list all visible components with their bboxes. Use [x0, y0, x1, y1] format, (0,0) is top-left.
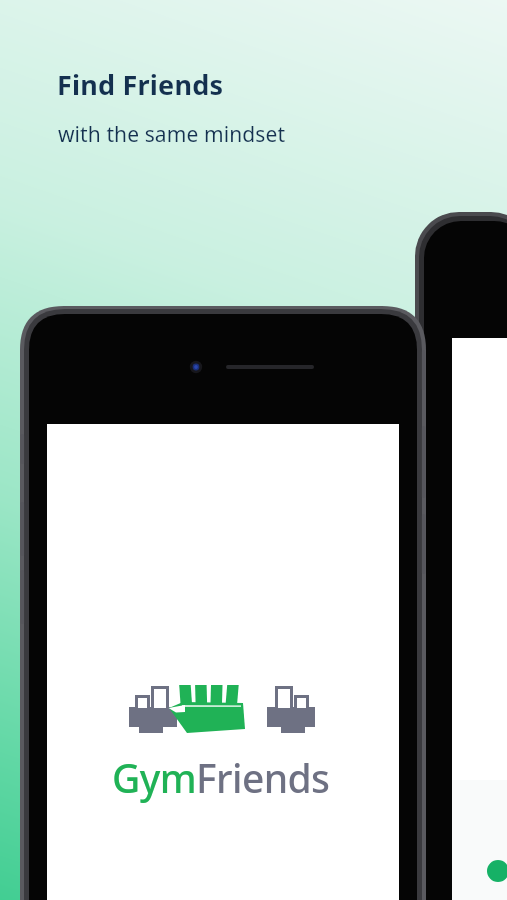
staticText: with the same mindset	[58, 120, 286, 149]
staticText: Find Friends	[57, 66, 224, 103]
staticText: GymFriends	[112, 751, 330, 804]
button[interactable]: Second phone mockup	[415, 212, 507, 900]
button[interactable]: GymFriends app phone mockup	[20, 306, 426, 900]
